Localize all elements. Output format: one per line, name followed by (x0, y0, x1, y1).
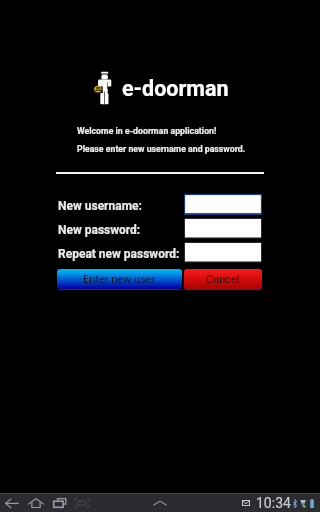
button[interactable]: Enter new user (57, 269, 182, 290)
staticText: New password: (58, 223, 141, 237)
staticText: Repeat new password: (58, 247, 180, 261)
button[interactable]: Status (242, 495, 314, 511)
staticText: Please enter new username and password. (77, 144, 246, 154)
button[interactable] (184, 218, 262, 239)
button[interactable]: Home (27, 494, 45, 512)
staticText: 10:34 (256, 495, 291, 511)
button[interactable]: Back (3, 494, 21, 512)
staticText: Cancel (206, 273, 240, 286)
staticText: New username: (58, 199, 142, 213)
staticText: Welcome in e-doorman application! (77, 126, 217, 136)
button[interactable]: Expand (149, 495, 171, 511)
button[interactable]: Cancel (184, 269, 262, 290)
staticText: e-doorman (122, 76, 229, 101)
staticText: Enter new user (83, 273, 156, 286)
button[interactable]: Screenshot (73, 494, 91, 512)
button[interactable]: Recent apps (51, 494, 69, 512)
button[interactable] (184, 242, 262, 263)
button[interactable] (184, 194, 262, 215)
